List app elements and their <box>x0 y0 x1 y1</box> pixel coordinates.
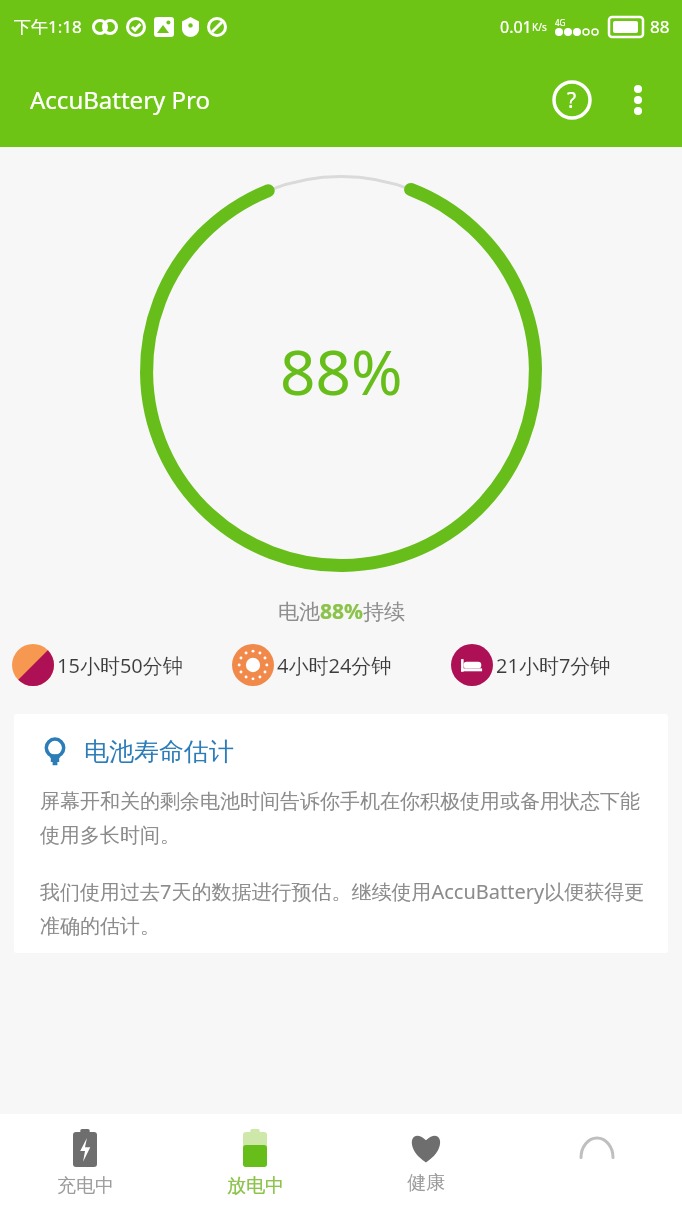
button[interactable]: 电池寿命估计 <box>14 714 668 953</box>
staticText: 电池寿命估计 <box>84 736 234 767</box>
staticText: 88% <box>280 329 403 413</box>
staticText: 充电中 <box>57 1174 114 1198</box>
staticText: 0.01 <box>500 16 532 38</box>
button[interactable]: Help <box>544 72 600 128</box>
staticText: 我们使用过去7天的数据进行预估。继续使用AccuBattery以便获得更准确的估… <box>40 878 646 939</box>
staticText: 电池88%持续 <box>278 597 405 626</box>
staticText: 4G <box>555 17 566 28</box>
button[interactable]: 放电中 <box>170 1114 340 1212</box>
staticText: K/s <box>532 20 547 34</box>
staticText: 21小时7分钟 <box>496 652 611 679</box>
staticText: 4小时24分钟 <box>277 652 392 679</box>
button[interactable]: 15小时50分钟 <box>12 642 232 688</box>
button[interactable]: 健康 <box>340 1114 511 1212</box>
button[interactable]: 4小时24分钟 <box>232 642 451 688</box>
button[interactable]: Speed <box>511 1114 682 1212</box>
staticText: ? <box>567 86 577 115</box>
staticText: 下午1:18 <box>14 15 82 38</box>
staticText: AccuBattery Pro <box>30 83 210 116</box>
button[interactable]: 充电中 <box>0 1114 170 1212</box>
button[interactable]: 21小时7分钟 <box>451 642 670 688</box>
staticText: 88 <box>650 15 670 38</box>
staticText: 健康 <box>407 1171 445 1195</box>
staticText: 15小时50分钟 <box>57 652 183 679</box>
staticText: 屏幕开和关的剩余电池时间告诉你手机在你积极使用或备用状态下能使用多长时间。 <box>40 789 646 848</box>
staticText: 放电中 <box>227 1174 284 1198</box>
button[interactable]: More options <box>610 72 666 128</box>
